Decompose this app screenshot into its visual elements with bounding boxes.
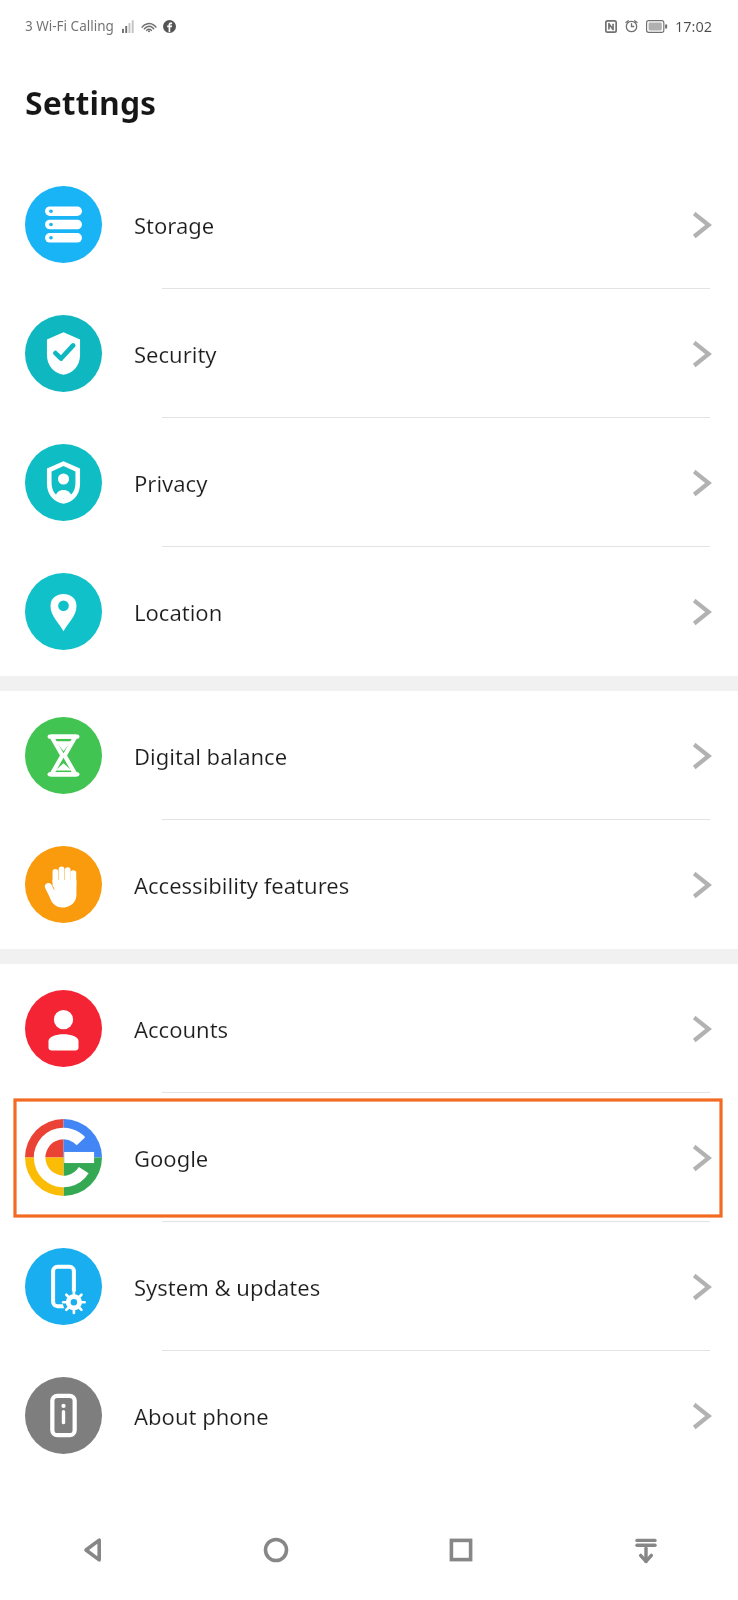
button[interactable]: Security [0, 289, 738, 418]
button[interactable]: Back [0, 1500, 184, 1600]
staticText: Security [134, 339, 691, 369]
staticText: Location [134, 597, 691, 627]
button[interactable]: About phone [0, 1351, 738, 1480]
button[interactable]: Location [0, 547, 738, 676]
staticText: About phone [134, 1401, 691, 1431]
button[interactable]: Digital balance [0, 691, 738, 820]
button[interactable]: Storage [0, 160, 738, 289]
button[interactable]: Privacy [0, 418, 738, 547]
button[interactable]: Recent apps [368, 1500, 553, 1600]
staticText: Storage [134, 210, 691, 240]
staticText: 3 Wi-Fi Calling [25, 17, 114, 35]
staticText: Privacy [134, 468, 691, 498]
button[interactable]: Google [0, 1093, 738, 1222]
staticText: Google [134, 1143, 691, 1173]
button[interactable]: Accessibility features [0, 820, 738, 949]
button[interactable]: Accounts [0, 964, 738, 1093]
button[interactable]: Hide navigation bar [553, 1500, 738, 1600]
staticText: Settings [25, 81, 157, 125]
staticText: Accounts [134, 1014, 691, 1044]
button[interactable]: System & updates [0, 1222, 738, 1351]
staticText: Accessibility features [134, 870, 691, 900]
button[interactable]: Home [184, 1500, 368, 1600]
staticText: System & updates [134, 1272, 691, 1302]
staticText: Digital balance [134, 741, 691, 771]
staticText: 17:02 [675, 16, 713, 36]
